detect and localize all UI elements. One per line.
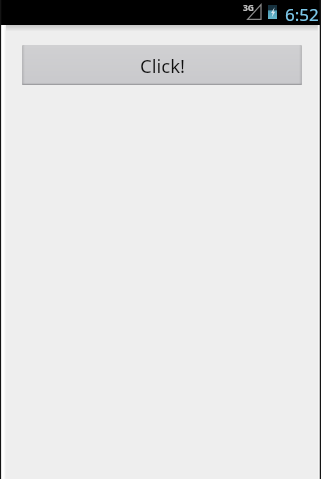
staticText: Click! — [140, 53, 185, 78]
other: Battery charging — [268, 5, 277, 19]
other: Mobile signal 3G — [242, 0, 263, 25]
staticText: 6:52 — [285, 3, 319, 26]
button[interactable]: Click! — [22, 45, 302, 85]
staticText: 3G — [243, 2, 255, 14]
